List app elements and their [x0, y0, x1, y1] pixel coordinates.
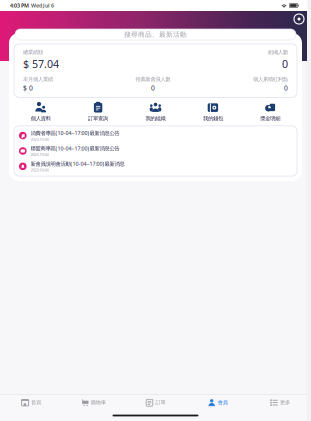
button[interactable]: Settings — [294, 14, 304, 24]
staticText: 新會員說明會活動(10-04~17:00)最新消息 — [31, 160, 125, 167]
staticText: 4:03 PM — [10, 2, 29, 9]
button[interactable]: 我的組織 — [127, 99, 184, 124]
staticText: $ 57.04 — [23, 57, 59, 71]
staticText: 消費者專區(10-04~17:00)最新消息公告 — [31, 129, 120, 136]
button[interactable]: 首頁 — [0, 398, 62, 406]
button[interactable]: 訂單 — [124, 398, 187, 406]
staticText: Wed Jul 6 — [29, 2, 54, 9]
button[interactable]: 獎金明細 — [242, 99, 299, 124]
staticText: 首頁 — [31, 399, 41, 406]
staticText: 訂單 — [155, 399, 165, 406]
staticText: 2023-10-04 — [31, 152, 49, 157]
button[interactable]: 會員 — [187, 398, 249, 406]
staticText: 搜尋商品、最新活動 — [124, 30, 187, 39]
staticText: 會員 — [218, 399, 228, 406]
button[interactable]: 更多 — [249, 398, 311, 406]
staticText: 訂單查詢 — [88, 115, 108, 122]
staticText: 我的錢包 — [203, 115, 223, 122]
staticText: 個人累積紅利點 — [253, 76, 288, 82]
staticText: 2023-10-04 — [31, 167, 49, 172]
staticText: 0 — [282, 57, 288, 71]
staticText: 組織人數 — [268, 49, 288, 56]
button[interactable]: 訂單查詢 — [69, 99, 127, 124]
button[interactable]: 個人資料 — [12, 99, 69, 124]
button[interactable]: 我的錢包 — [184, 99, 242, 124]
staticText: $ 0 — [23, 83, 33, 92]
staticText: 0 — [284, 83, 288, 92]
button[interactable]: 聯盟商專區(10-04~17:00)最新消息公告 — [14, 143, 297, 159]
button[interactable]: 搜尋商品、最新活動 — [15, 29, 296, 40]
staticText: 聯盟商專區(10-04~17:00)最新消息公告 — [31, 145, 120, 152]
staticText: 2023-10-04 — [31, 136, 49, 142]
button[interactable]: 消費者專區(10-04~17:00)最新消息公告 — [14, 128, 297, 143]
staticText: 我的組織 — [145, 115, 165, 122]
staticText: 購物車 — [91, 399, 106, 406]
staticText: 總業績額 — [23, 49, 43, 56]
staticText: 更多 — [280, 399, 290, 406]
staticText: 個人資料 — [31, 115, 51, 122]
staticText: 本月個人業績 — [23, 76, 53, 82]
button[interactable]: 購物車 — [62, 398, 124, 406]
staticText: 推薦新會員人數 — [135, 76, 170, 82]
staticText: 0 — [151, 83, 155, 92]
staticText: 獎金明細 — [260, 115, 280, 122]
button[interactable]: 新會員說明會活動(10-04~17:00)最新消息 — [14, 159, 297, 174]
